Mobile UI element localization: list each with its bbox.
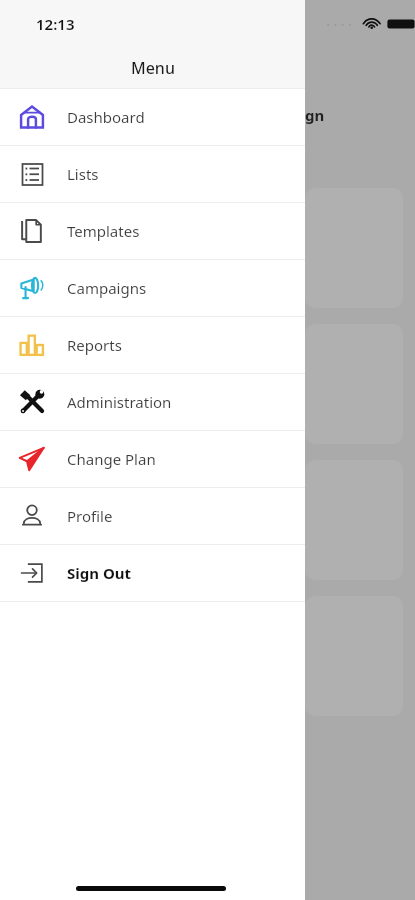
button[interactable]: Dashboard bbox=[0, 89, 305, 145]
staticText: Change Plan bbox=[67, 449, 156, 469]
staticText: Campaigns bbox=[67, 278, 147, 298]
staticText: Administration bbox=[67, 392, 172, 412]
button[interactable]: Administration bbox=[0, 374, 305, 430]
button[interactable]: Sign Out bbox=[0, 545, 305, 601]
staticText: Lists bbox=[67, 164, 99, 184]
staticText: Dashboard bbox=[67, 107, 145, 127]
staticText: Profile bbox=[67, 506, 113, 526]
button[interactable]: Change Plan bbox=[0, 431, 305, 487]
staticText: Reports bbox=[67, 335, 122, 355]
staticText: Sign Out bbox=[67, 563, 132, 583]
button[interactable]: Reports bbox=[0, 317, 305, 373]
button[interactable]: Campaigns bbox=[0, 260, 305, 316]
button[interactable]: Lists bbox=[0, 146, 305, 202]
staticText: gn bbox=[305, 105, 325, 125]
button[interactable]: Profile bbox=[0, 488, 305, 544]
button[interactable]: Templates bbox=[0, 203, 305, 259]
staticText: Templates bbox=[67, 221, 140, 241]
staticText: 12:13 bbox=[36, 14, 75, 34]
staticText: Menu bbox=[131, 57, 175, 79]
